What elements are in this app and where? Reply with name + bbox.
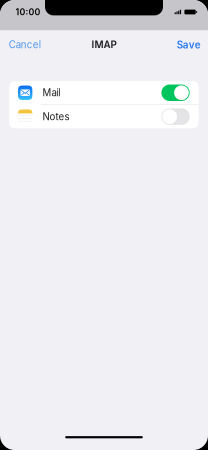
staticText: Save xyxy=(177,39,201,51)
button[interactable]: Cancel xyxy=(0,30,47,59)
staticText: 10:00 xyxy=(16,7,41,17)
staticText: Mail xyxy=(42,87,60,99)
staticText: IMAP xyxy=(91,39,116,51)
staticText: Notes xyxy=(42,111,69,122)
button[interactable]: Notes xyxy=(9,105,199,128)
staticText: Cancel xyxy=(9,39,41,51)
button[interactable]: Mail xyxy=(9,81,199,104)
button[interactable]: Save xyxy=(171,30,208,59)
